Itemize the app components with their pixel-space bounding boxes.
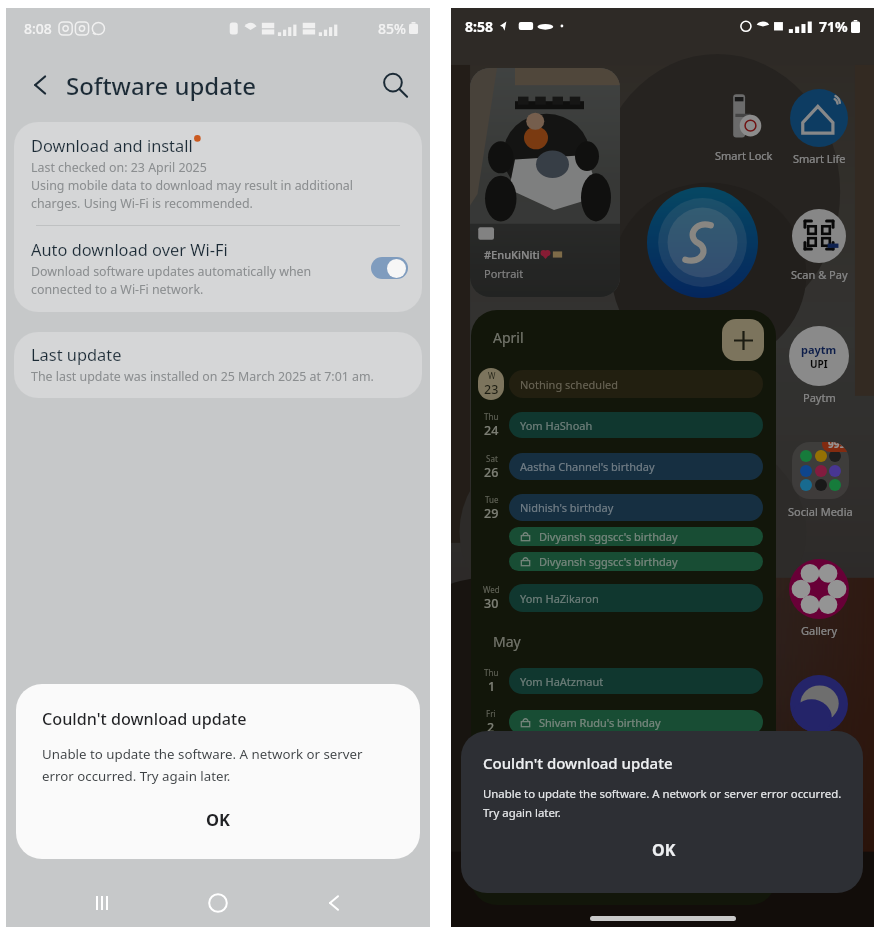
staticText: Wed — [483, 584, 500, 595]
staticText: Couldn't download update — [42, 708, 247, 730]
staticText: Smart Lock — [715, 148, 773, 163]
button[interactable]: Nidhish's birthday — [509, 494, 763, 521]
staticText: 999+ — [828, 442, 849, 451]
staticText: Portrait — [484, 266, 524, 281]
button[interactable]: Gallery — [779, 559, 859, 638]
button[interactable]: App — [790, 675, 848, 733]
button[interactable]: OK — [42, 801, 394, 837]
staticText: Last update — [31, 343, 122, 365]
staticText: OK — [206, 808, 231, 830]
staticText: 2 — [487, 719, 495, 736]
staticText: Yom HaAtzmaut — [520, 674, 604, 689]
staticText: Aastha Channel's birthday — [520, 459, 655, 474]
button[interactable]: Nothing scheduled — [509, 370, 763, 398]
staticText: Scan & Pay — [791, 267, 848, 282]
staticText: 8:58 — [465, 17, 493, 36]
button[interactable]: Yom HaShoah — [509, 412, 763, 438]
staticText: 26 — [484, 464, 499, 481]
staticText: Nothing scheduled — [520, 377, 618, 392]
staticText: 23 — [484, 381, 499, 398]
staticText: Nidhish's birthday — [520, 500, 614, 515]
staticText: UPI — [810, 357, 828, 371]
button[interactable]: Scan & Pay — [779, 209, 859, 282]
staticText: April — [493, 328, 524, 347]
button[interactable] — [371, 257, 408, 279]
staticText: 29 — [484, 505, 499, 522]
staticText: 8:08 — [24, 19, 52, 38]
button[interactable]: OK — [483, 834, 845, 866]
staticText: OK — [652, 839, 676, 861]
staticText: Unable to update the software. A network… — [42, 745, 363, 785]
staticText: May — [493, 632, 521, 651]
staticText: 30 — [484, 595, 499, 612]
staticText: Social Media — [788, 504, 853, 519]
staticText: Sat — [486, 453, 498, 464]
staticText: Gallery — [801, 623, 838, 638]
button[interactable]: Add event — [722, 319, 764, 361]
button[interactable]: Shazam — [647, 187, 758, 298]
staticText: The last update was installed on 25 Marc… — [31, 368, 374, 385]
staticText: Auto download over Wi-Fi — [31, 238, 228, 260]
staticText: Fri — [486, 708, 496, 719]
button[interactable]: Last update — [14, 332, 422, 398]
button[interactable]: Back — [24, 68, 58, 102]
staticText: paytm — [801, 342, 837, 357]
button[interactable]: Auto download over Wi-Fi — [14, 226, 422, 312]
button[interactable]: paytm — [779, 326, 859, 405]
staticText: 24 — [484, 422, 499, 439]
staticText: Unable to update the software. A network… — [483, 786, 842, 820]
button[interactable]: #EnuKiNiti — [470, 68, 620, 297]
staticText: 1 — [488, 678, 496, 695]
staticText: 71% — [819, 17, 848, 36]
staticText: Divyansh sggscc's birthday — [539, 554, 678, 569]
staticText: Download and install — [31, 134, 193, 156]
button[interactable]: Aastha Channel's birthday — [509, 453, 763, 480]
staticText: 85% — [378, 19, 406, 38]
button[interactable]: Yom HaAtzmaut — [509, 668, 763, 694]
staticText: Yom HaShoah — [520, 418, 593, 433]
staticText: Thu — [484, 667, 499, 678]
button[interactable]: Yom HaZikaron — [509, 584, 763, 612]
staticText: Divyansh sggscc's birthday — [539, 529, 678, 544]
staticText: Paytm — [803, 390, 836, 405]
staticText: W — [488, 370, 496, 381]
button[interactable]: Home — [198, 883, 238, 923]
button[interactable]: Search — [378, 68, 412, 102]
staticText: Software update — [66, 69, 256, 102]
button[interactable]: Smart Life — [779, 89, 859, 166]
button[interactable]: Recents — [82, 883, 122, 923]
staticText: Yom HaZikaron — [520, 591, 599, 606]
staticText: Shivam Rudu's birthday — [539, 715, 661, 730]
button[interactable]: Smart Lock — [704, 90, 784, 163]
staticText: Tue — [485, 494, 499, 505]
staticText: Thu — [484, 411, 499, 422]
staticText: Last checked on: 23 April 2025 Using mob… — [31, 159, 354, 212]
button[interactable]: Back — [314, 883, 354, 923]
staticText: Download software updates automatically … — [31, 263, 312, 298]
button[interactable]: Shivam Rudu's birthday — [509, 710, 763, 734]
button[interactable]: Divyansh sggscc's birthday — [509, 527, 763, 546]
staticText: Couldn't download update — [483, 753, 673, 773]
button[interactable]: Download and install — [14, 122, 422, 225]
staticText: #EnuKiNiti — [484, 247, 540, 262]
button[interactable]: 999+ — [780, 442, 860, 519]
staticText: Smart Life — [793, 151, 846, 166]
button[interactable]: Divyansh sggscc's birthday — [509, 552, 763, 571]
